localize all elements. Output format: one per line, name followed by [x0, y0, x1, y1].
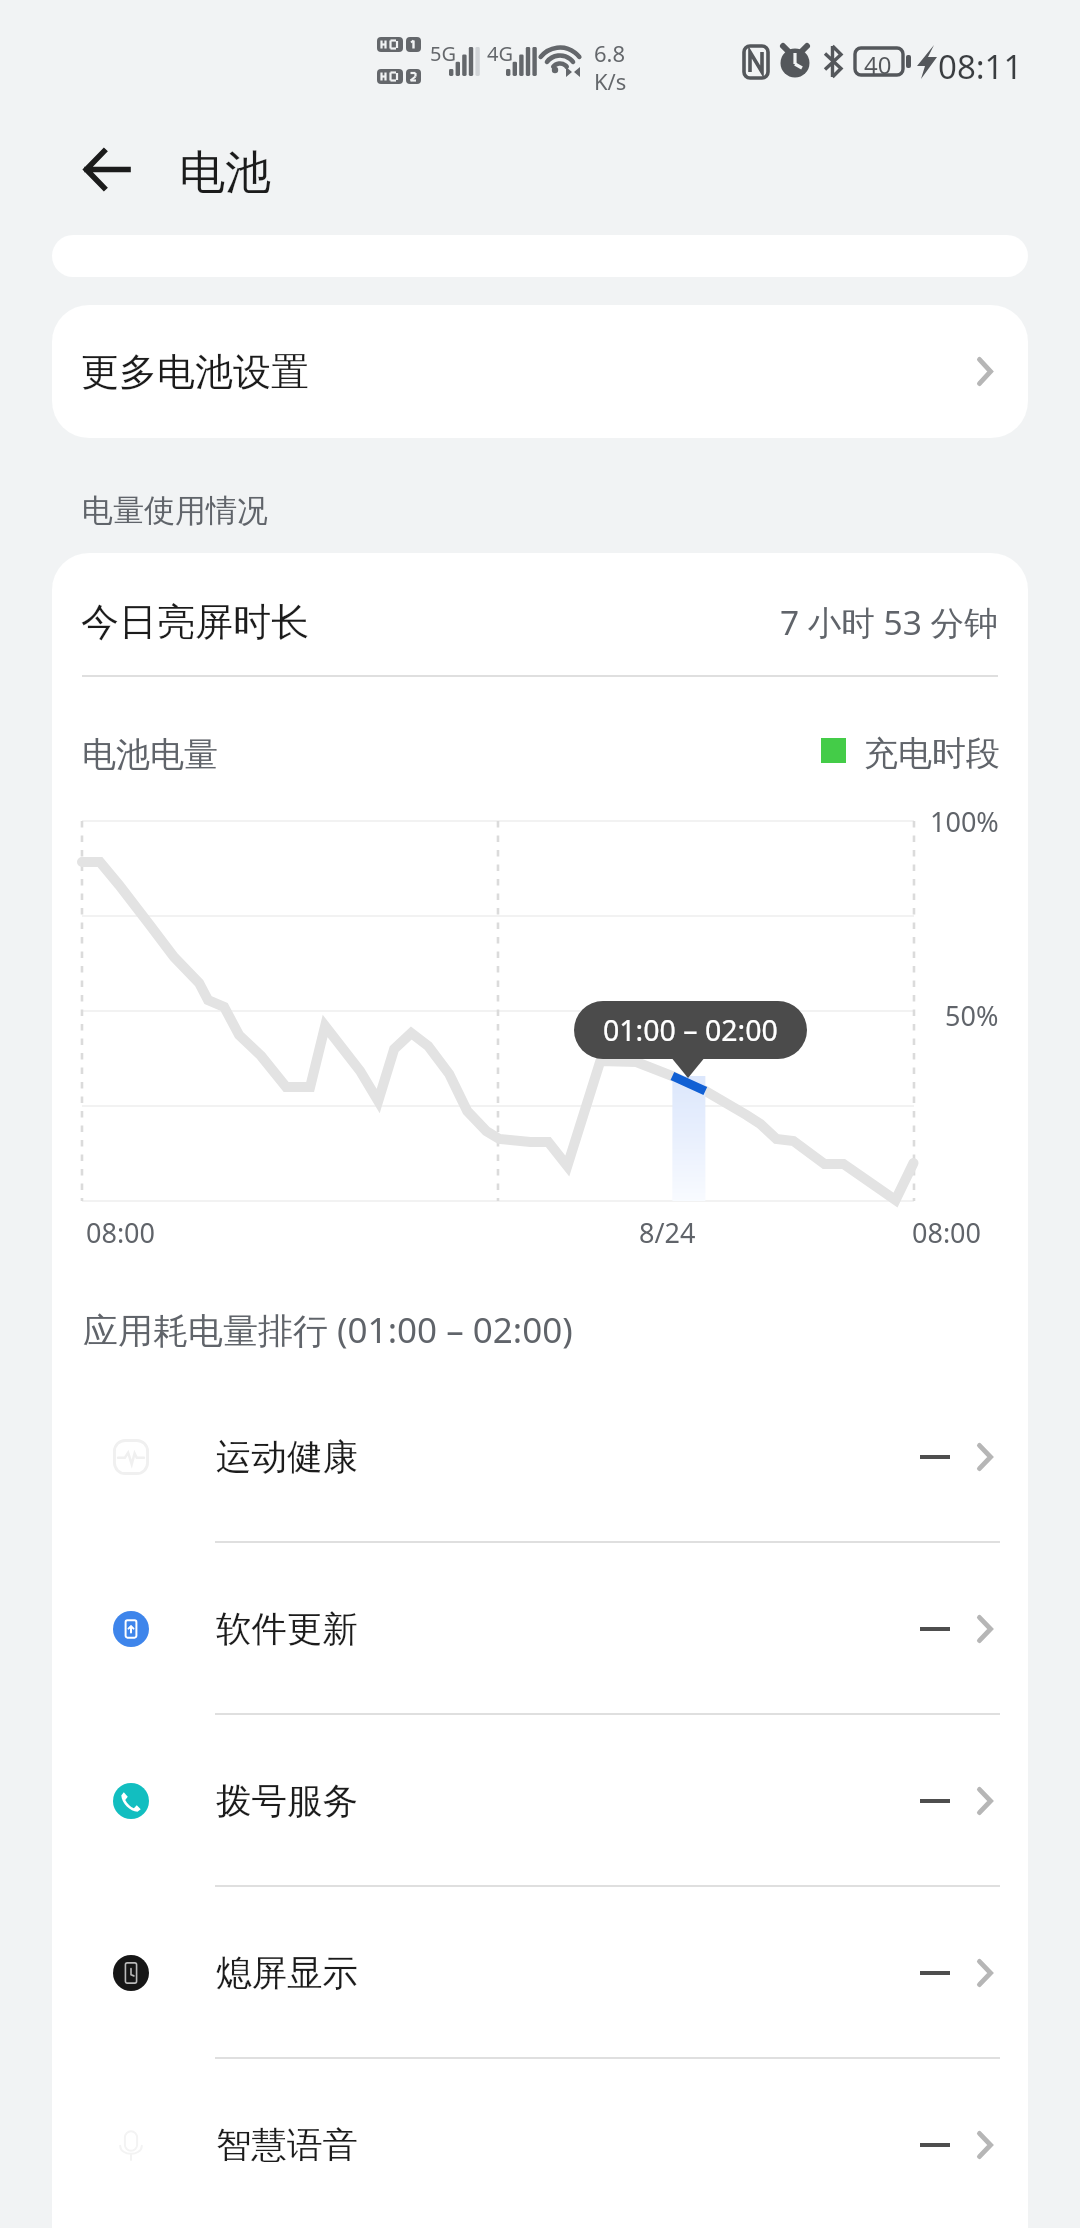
staticText: 01:00 – 02:00 [603, 1011, 778, 1050]
staticText: 运动健康 [216, 1435, 358, 1480]
staticText: 4G [487, 40, 513, 67]
staticText: 5G [430, 40, 456, 67]
staticText: 100% [930, 803, 999, 840]
staticText: 08:00 [86, 1214, 156, 1251]
staticText: 电池 [179, 144, 271, 202]
staticText: 08:11 [938, 44, 1023, 89]
button[interactable]: 今日亮屏时长 [52, 561, 1028, 683]
button[interactable]: 智慧语音 [52, 2059, 1028, 2228]
button[interactable]: Back [66, 131, 146, 207]
staticText: 8/24 [639, 1214, 696, 1251]
staticText: 电量使用情况 [82, 491, 268, 530]
staticText: 6.8 K/s [594, 38, 627, 96]
button[interactable]: 熄屏显示 [52, 1887, 1028, 2059]
button[interactable]: 软件更新 [52, 1543, 1028, 1715]
button[interactable]: 运动健康 [52, 1371, 1028, 1543]
button[interactable]: 更多电池设置 [52, 305, 1028, 438]
button[interactable]: 拨号服务 [52, 1715, 1028, 1887]
staticText: 今日亮屏时长 [81, 598, 309, 646]
staticText: 软件更新 [216, 1607, 358, 1652]
staticText: 40 [864, 48, 892, 81]
staticText: 应用耗电量排行 (01:00 – 02:00) [83, 1306, 573, 1354]
staticText: 熄屏显示 [216, 1951, 358, 1996]
staticText: 充电时段 [864, 732, 1000, 775]
staticText: 7 小时 53 分钟 [780, 599, 998, 645]
staticText: 拨号服务 [216, 1779, 358, 1824]
staticText: 50% [945, 997, 999, 1034]
staticText: 电池电量 [82, 733, 218, 776]
staticText: 更多电池设置 [81, 348, 309, 396]
staticText: 08:00 [912, 1214, 982, 1251]
staticText: 智慧语音 [216, 2123, 358, 2168]
